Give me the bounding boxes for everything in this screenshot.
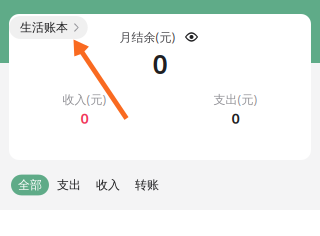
button[interactable]: 收入: [89, 175, 127, 195]
staticText: 全部: [18, 178, 42, 192]
button[interactable]: 全部: [11, 175, 49, 195]
staticText: 0: [80, 108, 88, 128]
button[interactable]: Hide amount: [182, 30, 200, 44]
staticText: 生活账本: [20, 20, 68, 35]
staticText: 支出(元): [213, 91, 257, 107]
staticText: 0: [152, 46, 167, 81]
staticText: 月结余(元): [119, 29, 175, 45]
staticText: 收入: [96, 178, 120, 192]
button[interactable]: 生活账本: [9, 16, 88, 39]
staticText: 收入(元): [62, 91, 106, 107]
button[interactable]: 转账: [128, 175, 166, 195]
staticText: 支出: [57, 178, 81, 192]
staticText: 0: [231, 108, 239, 128]
staticText: 转账: [135, 178, 159, 192]
button[interactable]: 支出: [50, 175, 88, 195]
